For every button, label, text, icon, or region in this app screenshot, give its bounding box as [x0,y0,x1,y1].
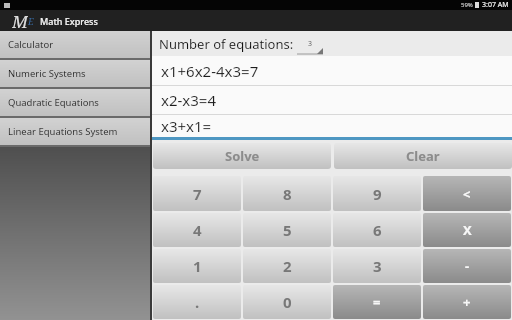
button[interactable]: 3 [297,32,323,56]
staticText: < [463,185,471,203]
button[interactable]: 8 [243,176,331,211]
staticText: 3 [308,39,313,49]
button[interactable]: Calculator [0,31,150,58]
staticText: 3 [373,256,382,276]
staticText: 3:07 AM [482,0,509,10]
staticText: + [463,293,471,311]
button[interactable]: Numeric Systems [0,60,150,87]
button[interactable]: = [333,285,421,319]
button[interactable]: 5 [243,213,331,247]
staticText: 59% [461,1,473,9]
button[interactable]: < [423,176,511,211]
staticText: Numeric Systems [8,67,86,80]
staticText: Linear Equations System [8,125,118,138]
button[interactable]: 3 [333,249,421,283]
staticText: 0 [283,292,292,312]
staticText: x1+6x2-4x3=7 [161,61,259,81]
button[interactable]: Solve [153,143,331,169]
button[interactable]: + [423,285,511,319]
button[interactable]: 9 [333,176,421,211]
button[interactable]: - [423,249,511,283]
staticText: M [12,10,28,31]
staticText: 5 [283,220,292,240]
button[interactable]: Linear Equations System [0,118,150,145]
staticText: Quadratic Equations [8,96,99,109]
staticText: X [463,221,472,239]
button[interactable]: x2-x3=4 [152,86,512,114]
staticText: Math Express [40,15,98,27]
staticText: Solve [225,147,260,165]
staticText: - [465,257,470,275]
staticText: 7 [193,184,202,204]
button[interactable]: X [423,213,511,247]
staticText: 4 [193,220,202,240]
button[interactable]: Clear [334,143,512,169]
button[interactable]: Quadratic Equations [0,89,150,116]
staticText: Calculator [8,38,54,51]
button[interactable]: . [153,285,241,319]
staticText: 6 [373,220,382,240]
staticText: . [195,292,200,312]
button[interactable]: x1+6x2-4x3=7 [152,56,512,85]
staticText: x3+x1= [161,116,212,136]
button[interactable]: 1 [153,249,241,283]
button[interactable]: 6 [333,213,421,247]
staticText: Clear [406,147,440,165]
staticText: 8 [283,184,292,204]
staticText: E [28,15,34,27]
button[interactable]: 4 [153,213,241,247]
button[interactable]: x3+x1= [152,115,512,137]
staticText: 2 [283,256,292,276]
staticText: x2-x3=4 [161,90,217,110]
button[interactable]: 2 [243,249,331,283]
button[interactable]: 7 [153,176,241,211]
button[interactable]: 0 [243,285,331,319]
staticText: 1 [193,256,202,276]
staticText: = [373,293,381,311]
staticText: 9 [373,184,382,204]
staticText: Number of equations: [159,35,297,53]
